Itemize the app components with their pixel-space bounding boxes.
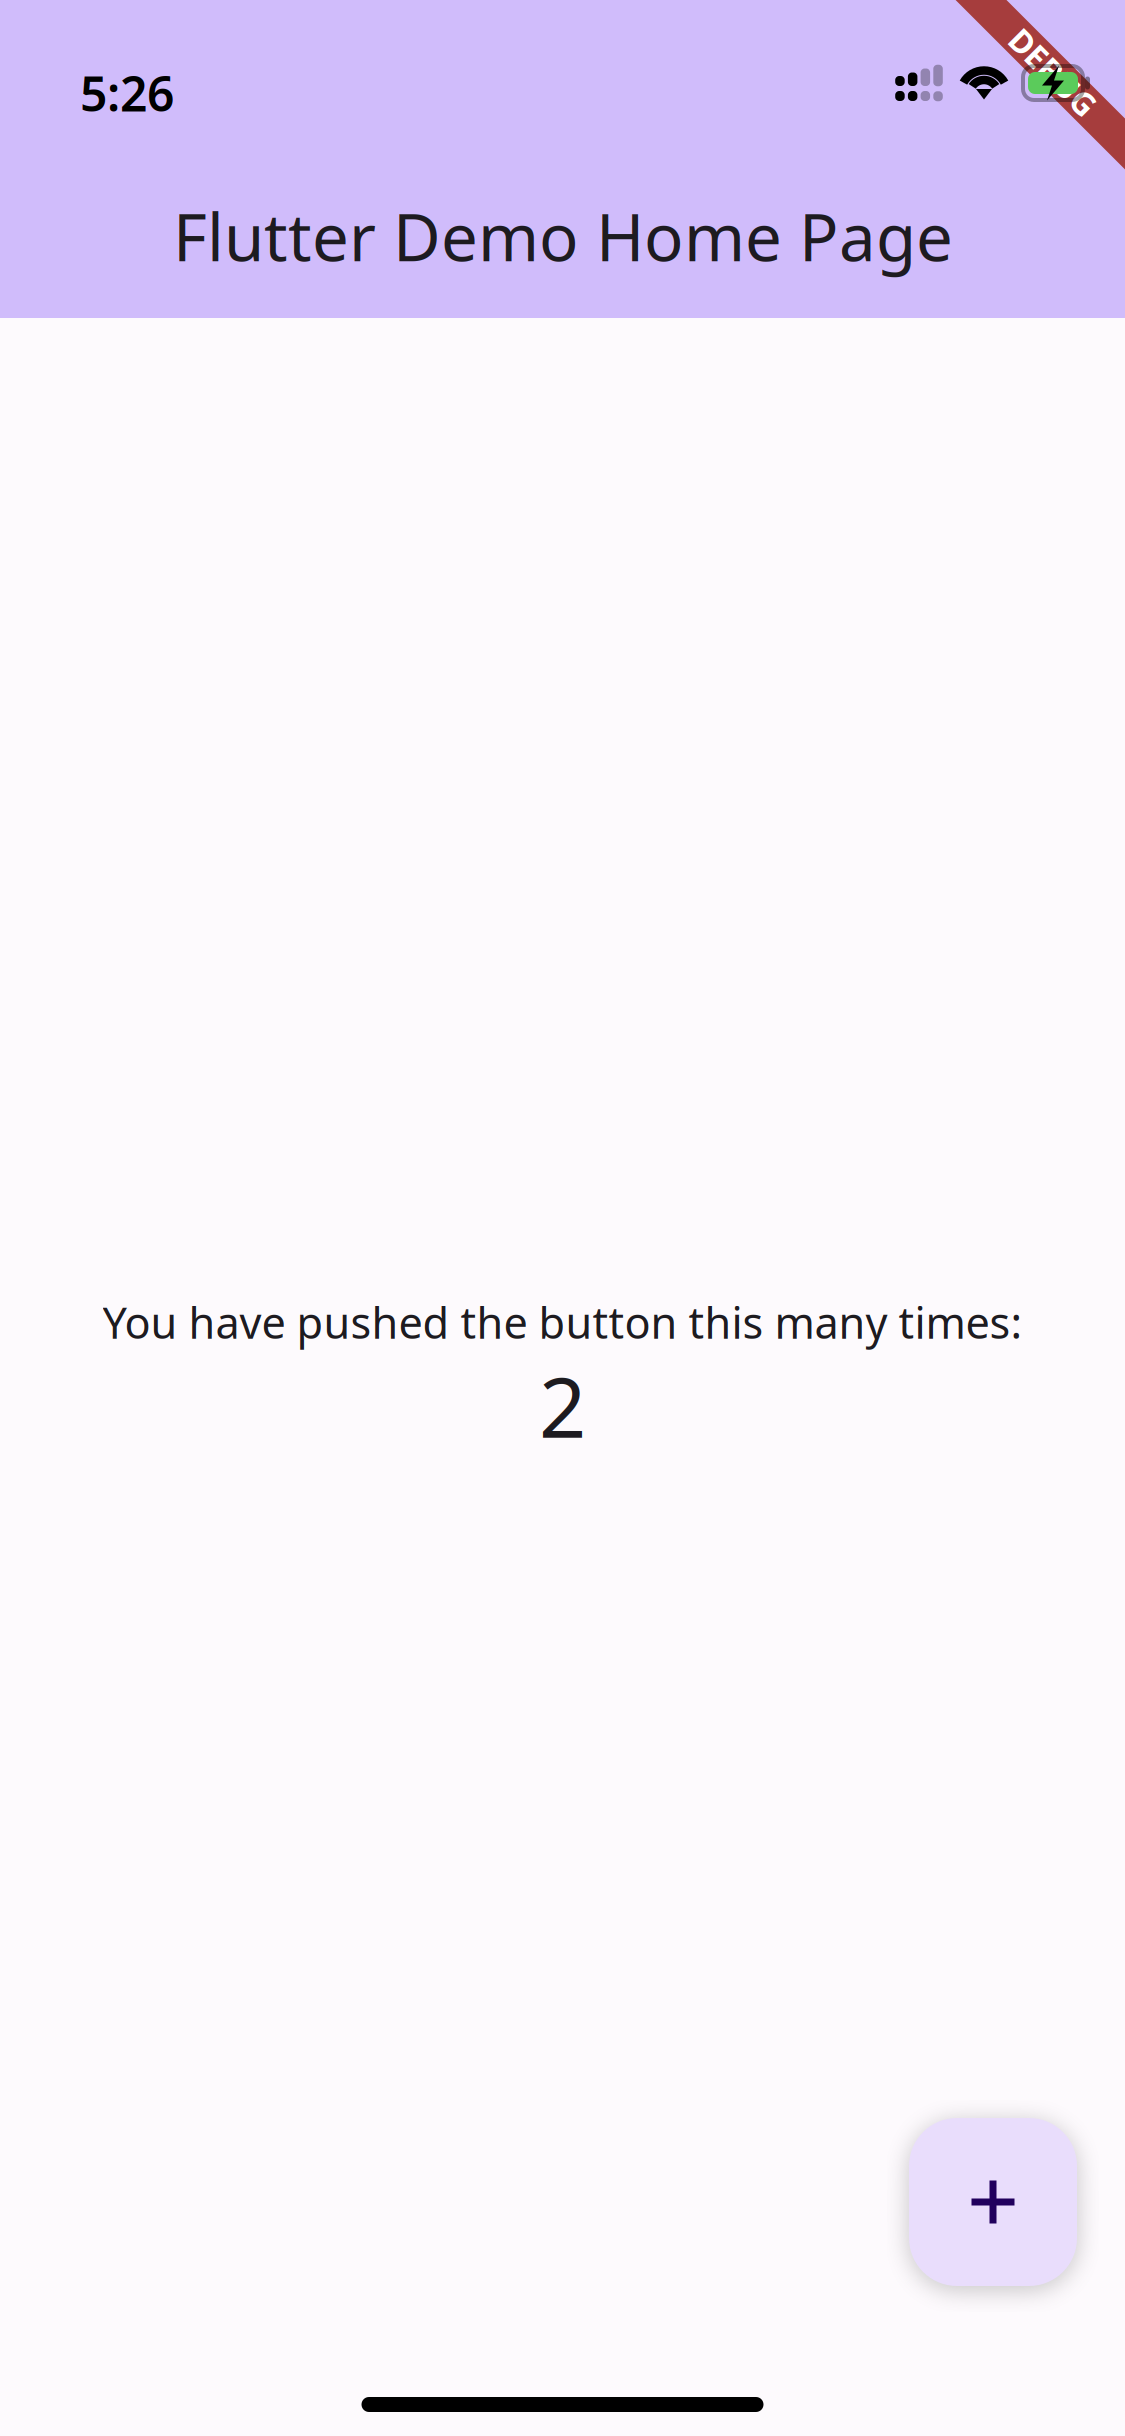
staticText: DEBUG — [998, 51, 1107, 93]
staticText: You have pushed the button this many tim… — [102, 1293, 1022, 1351]
staticText: 5:26 — [80, 61, 174, 125]
button[interactable]: Increment — [909, 2118, 1077, 2286]
staticText: 2 — [539, 1351, 586, 1461]
staticText: Flutter Demo Home Page — [173, 193, 953, 279]
